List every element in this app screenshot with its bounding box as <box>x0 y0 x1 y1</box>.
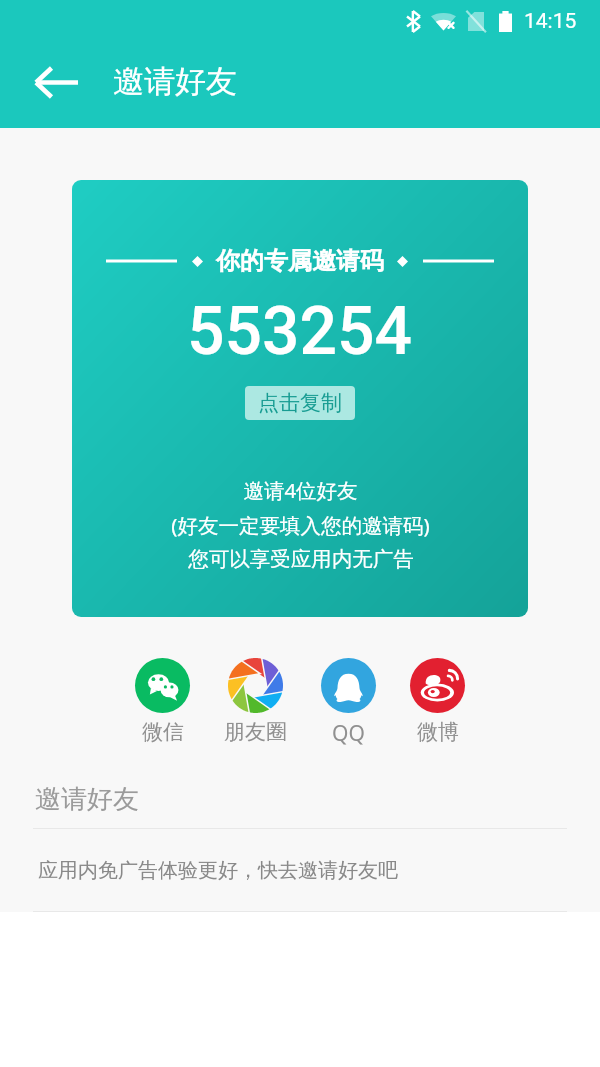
button[interactable]: 微信 <box>135 658 190 745</box>
button[interactable]: 朋友圈 <box>224 658 287 745</box>
button[interactable]: QQ <box>321 658 376 748</box>
staticText: 朋友圈 <box>224 719 287 745</box>
staticText: 邀请好友 <box>113 62 237 101</box>
button[interactable]: 点击复制 <box>245 386 355 420</box>
button[interactable]: Back <box>23 48 91 116</box>
staticText: 微信 <box>142 719 184 745</box>
staticText: 邀请4位好友 <box>243 476 358 504</box>
staticText: 应用内免广告体验更好，快去邀请好友吧 <box>38 858 398 883</box>
staticText: 你的专属邀请码 <box>216 246 384 276</box>
staticText: 您可以享受应用内无广告 <box>188 546 414 572</box>
staticText: (好友一定要填入您的邀请码) <box>171 511 430 539</box>
staticText: QQ <box>332 719 365 748</box>
button[interactable]: 微博 <box>410 658 465 745</box>
staticText: 微博 <box>417 719 459 745</box>
staticText: 553254 <box>187 293 413 370</box>
staticText: 14:15 <box>524 9 577 34</box>
staticText: 邀请好友 <box>35 783 139 816</box>
staticText: 点击复制 <box>258 390 342 416</box>
button[interactable]: 应用内免广告体验更好，快去邀请好友吧 <box>0 829 600 911</box>
